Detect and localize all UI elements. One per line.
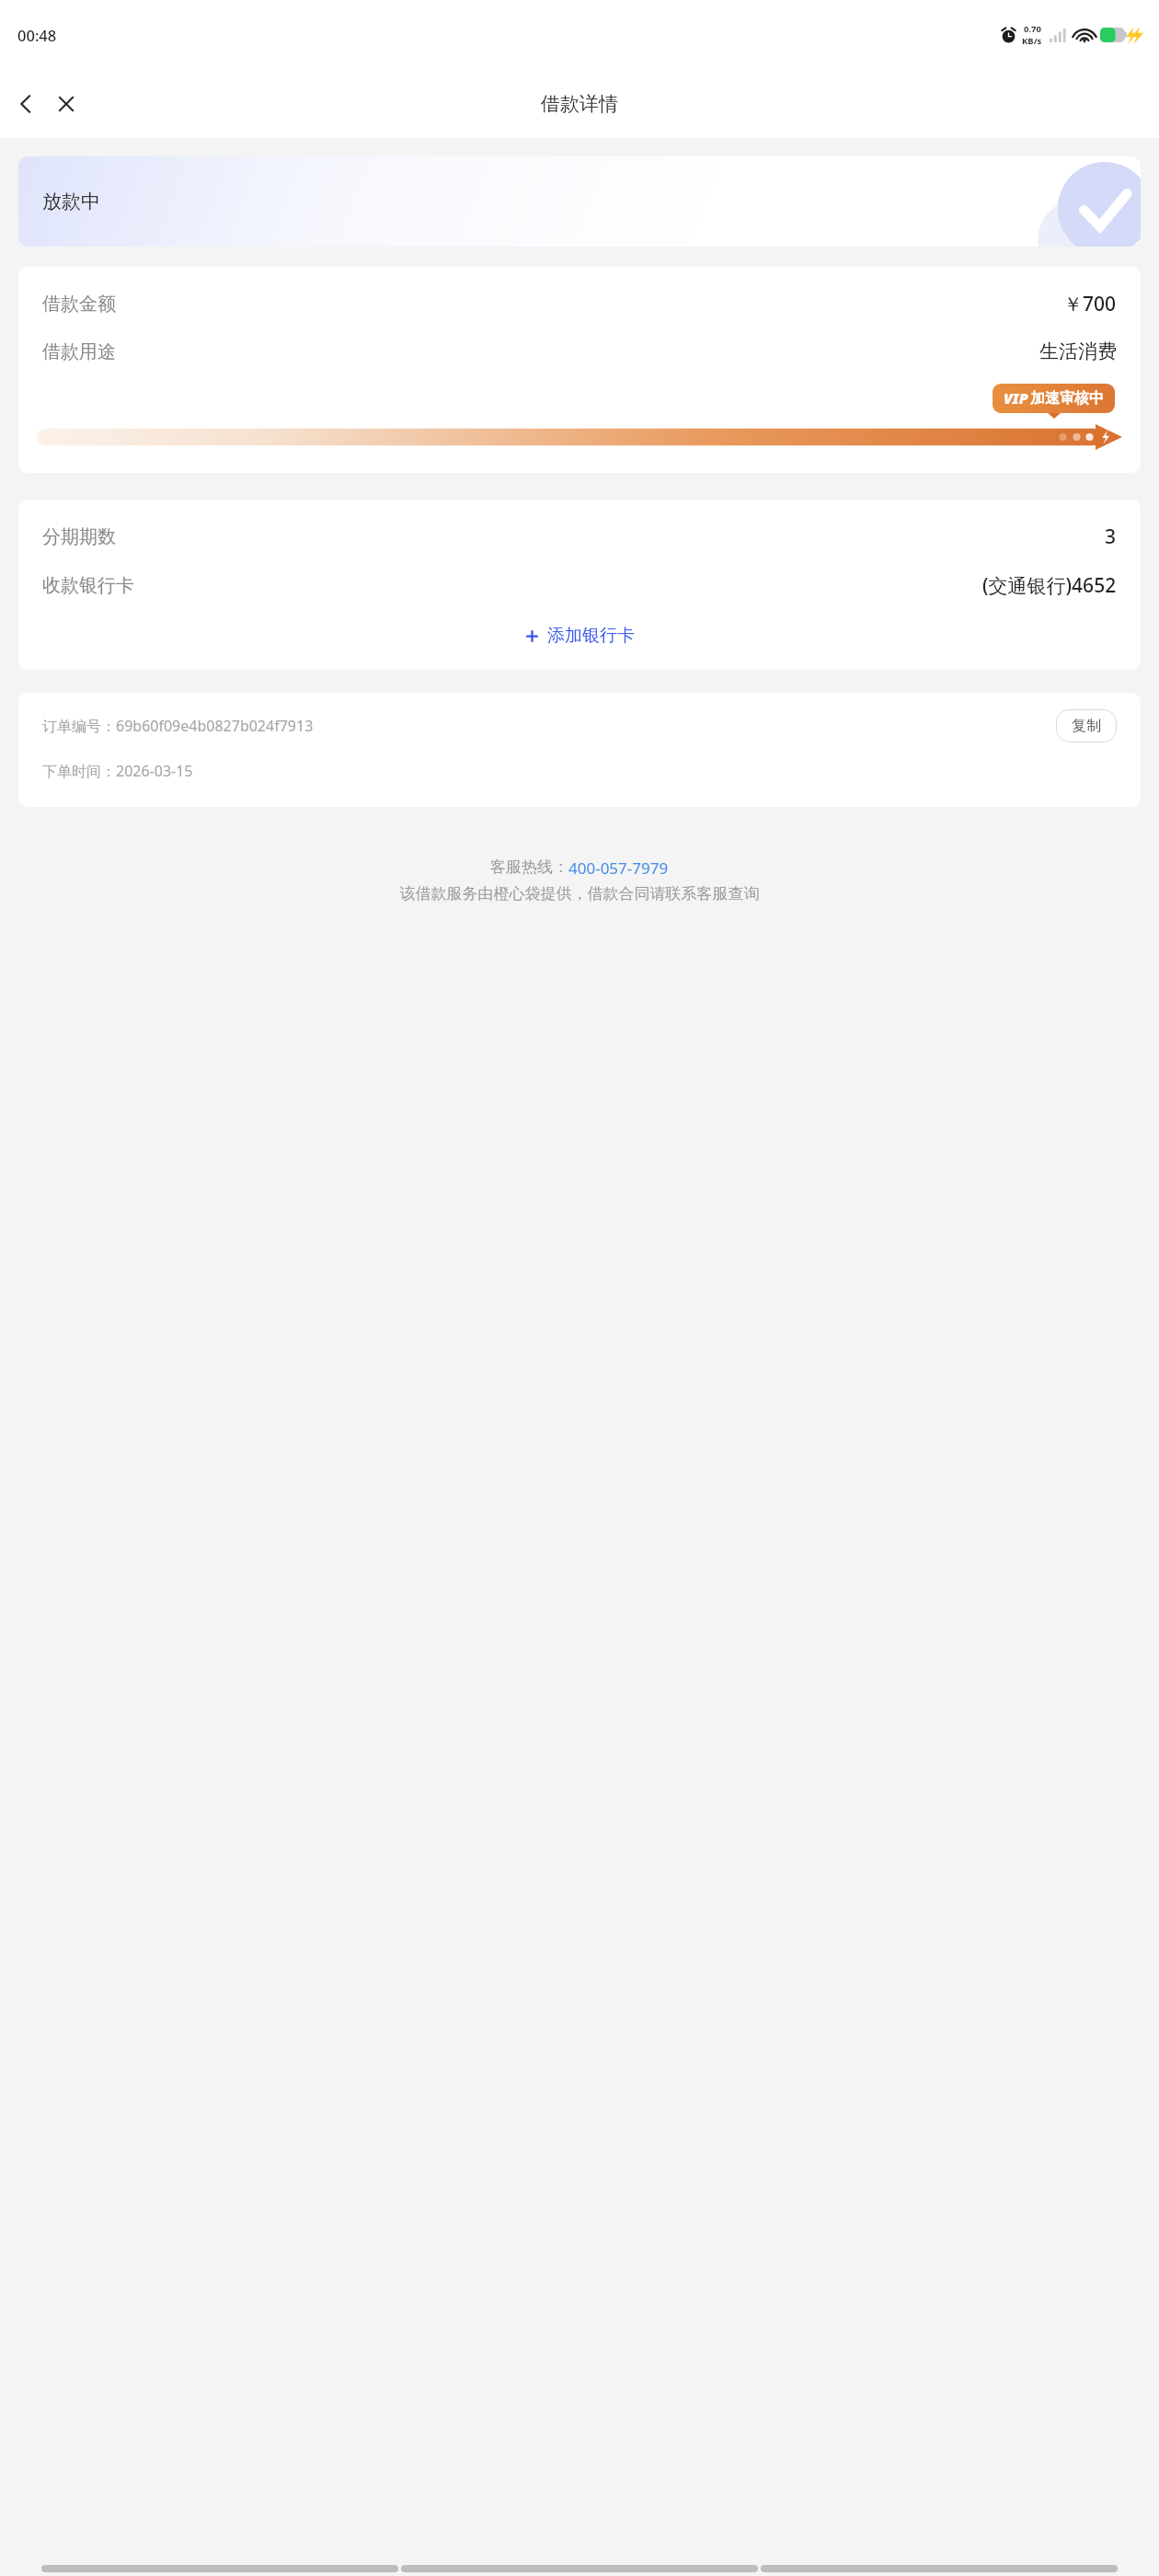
staticText: 00:48 (17, 25, 57, 45)
staticText: 收款银行卡 (42, 574, 982, 597)
staticText: 借款金额 (42, 293, 1063, 316)
staticText: 0.70 (1024, 23, 1041, 35)
button[interactable]: 放款中 (18, 156, 1141, 247)
button[interactable]: 复制 (1056, 709, 1117, 742)
staticText: VIP (1004, 388, 1028, 408)
staticText: 生活消费 (1039, 339, 1117, 363)
button[interactable]: Back (6, 84, 46, 124)
staticText: 下单时间：2026-03-15 (42, 761, 193, 781)
staticText: 复制 (1072, 717, 1101, 735)
staticText: 添加银行卡 (547, 625, 635, 647)
staticText: 订单编号：69b60f09e4b0827b024f7913 (42, 716, 1056, 736)
button[interactable]: 添加银行卡 (18, 612, 1141, 660)
staticText: 分期期数 (42, 525, 1105, 548)
staticText: KB/s (1022, 35, 1042, 47)
button[interactable]: Close (46, 84, 86, 124)
staticText: 放款中 (42, 190, 100, 213)
staticText: 加速审核中 (1030, 389, 1104, 408)
staticText: (交通银行)4652 (982, 572, 1117, 599)
button[interactable]: 400-057-7979 (568, 857, 669, 879)
staticText: 该借款服务由橙心袋提供，借款合同请联系客服查询 (0, 884, 1159, 903)
staticText: ￥700 (1063, 291, 1117, 317)
staticText: 客服热线： (490, 857, 568, 877)
staticText: 借款详情 (541, 92, 618, 116)
button[interactable]: Navigation (41, 2565, 398, 2572)
button[interactable]: Navigation (401, 2565, 758, 2572)
staticText: 3 (1105, 523, 1117, 550)
staticText: 借款用途 (42, 340, 1039, 363)
